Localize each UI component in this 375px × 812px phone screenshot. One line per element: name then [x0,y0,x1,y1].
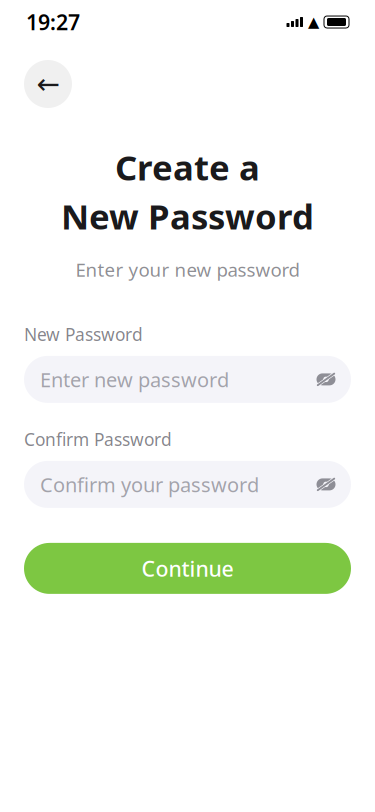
staticText: New Password [24,323,143,346]
staticText: New Password [61,193,314,239]
button[interactable]: Show Confirm Password [309,464,343,504]
staticText: ▲ [308,14,319,30]
staticText: 19:27 [26,8,80,36]
button[interactable]: Continue [24,543,351,594]
staticText: ← [36,68,59,100]
staticText: Enter your new password [75,257,299,282]
staticText: Continue [141,554,233,582]
staticText: Create a [115,144,260,190]
staticText: Confirm your password [40,471,259,498]
staticText: Confirm Password [24,428,172,451]
button[interactable]: Back [24,60,72,108]
button[interactable]: Show New Password [309,359,343,399]
staticText: Enter new password [40,366,229,393]
